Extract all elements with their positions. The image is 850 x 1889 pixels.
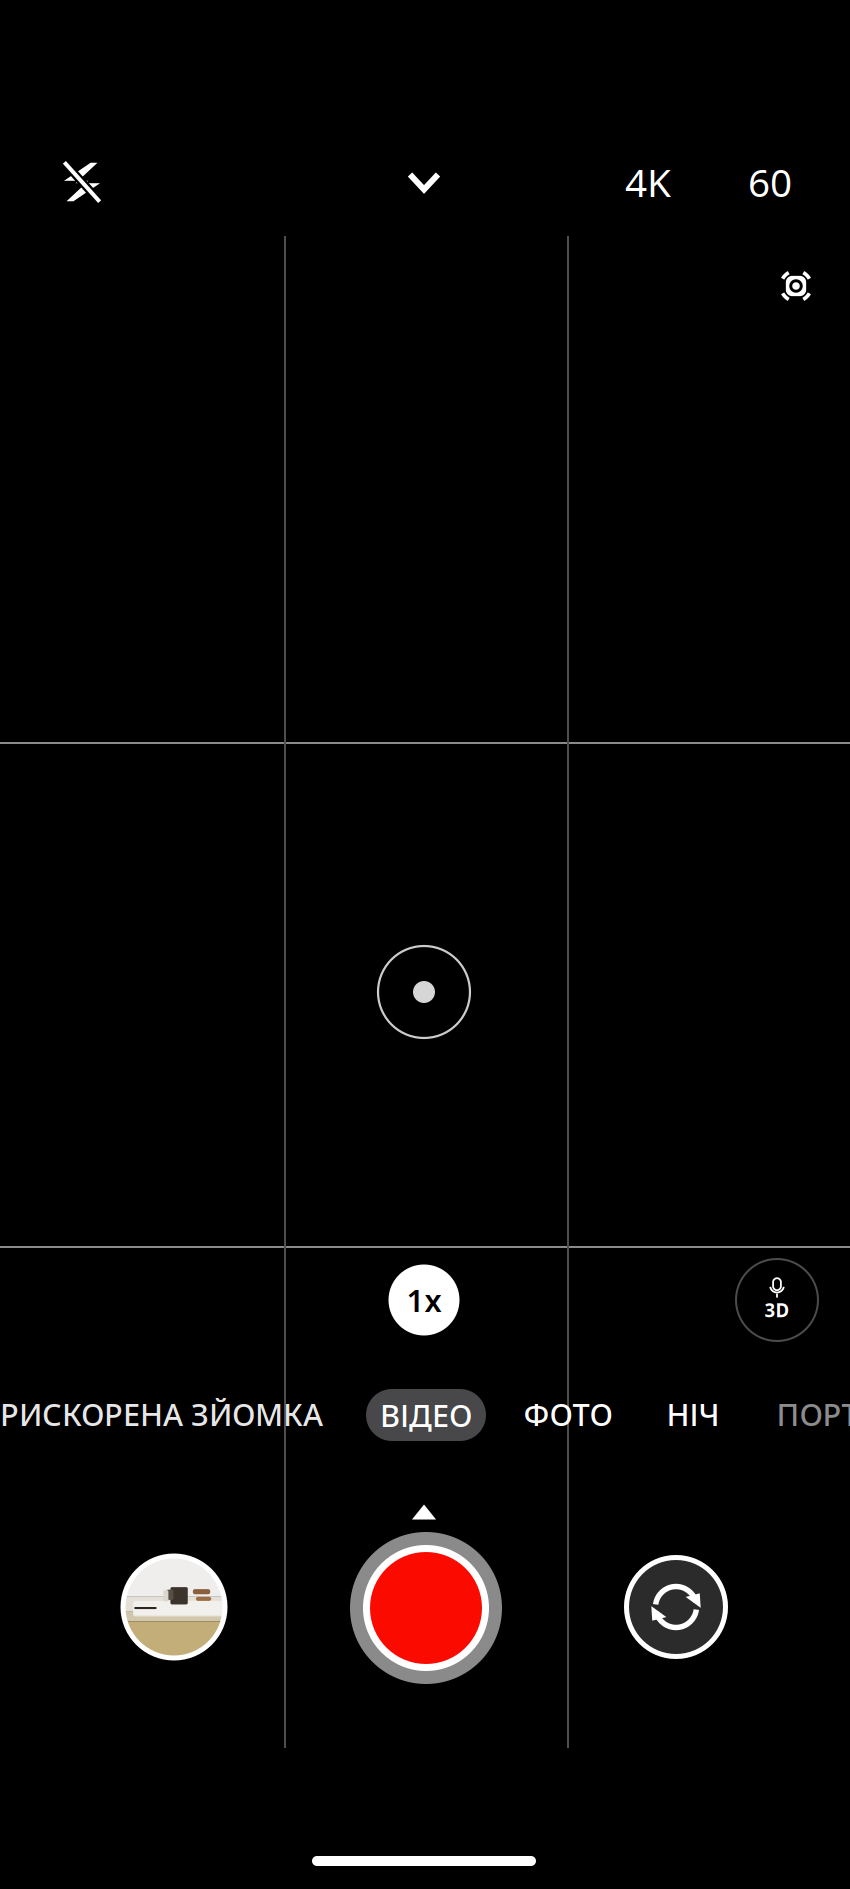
staticText: 60 [748,156,792,208]
button[interactable]: ПРИСКОРЕНА ЗЙОМКА [0,1379,323,1449]
button[interactable]: ПОРТРЕТ [776,1379,850,1449]
button[interactable]: ВІДЕО [366,1389,486,1441]
button[interactable]: Flash off [36,136,128,228]
staticText: ПРИСКОРЕНА ЗЙОМКА [0,1394,323,1434]
button[interactable]: 1x [378,1254,470,1346]
staticText: ПОРТРЕТ [776,1394,850,1434]
button[interactable]: Subject tracking [756,246,836,326]
button[interactable]: НІЧ [666,1379,719,1449]
button[interactable]: Record [346,1528,506,1688]
staticText: ВІДЕО [380,1395,472,1435]
button[interactable]: Switch camera [611,1542,741,1672]
staticText: 3D [764,1298,789,1322]
staticText: НІЧ [666,1394,719,1434]
staticText: ФОТО [523,1394,612,1434]
button[interactable]: 60 [724,140,816,224]
button[interactable]: Show camera options [378,142,470,222]
button[interactable]: 4K [602,140,694,224]
button[interactable]: ФОТО [523,1379,612,1449]
staticText: 1x [406,1280,441,1320]
button[interactable]: Spatial audio [731,1254,823,1346]
staticText: 4K [625,156,671,208]
button[interactable]: Photo library [109,1542,239,1672]
